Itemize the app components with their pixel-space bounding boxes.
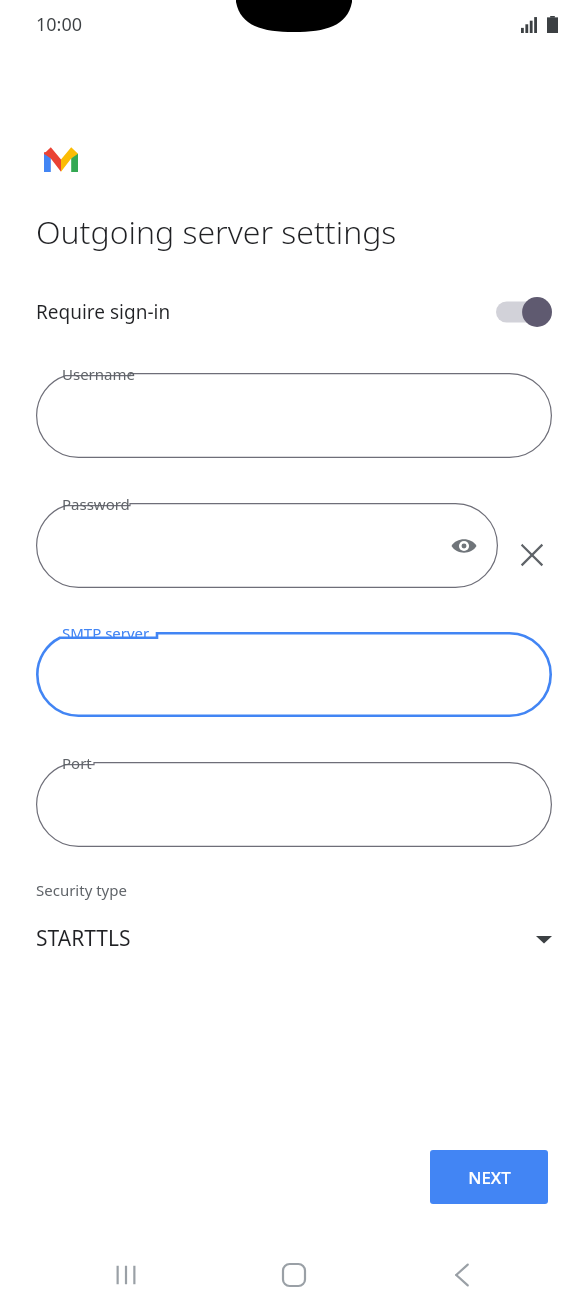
staticText: Password bbox=[62, 494, 130, 514]
staticText: 10:00 bbox=[36, 12, 83, 37]
staticText: Outgoing server settings bbox=[36, 210, 397, 254]
staticText: Port bbox=[62, 753, 92, 773]
staticText: Security type bbox=[36, 880, 127, 900]
staticText: STARTTLS bbox=[36, 924, 131, 953]
button[interactable]: Password bbox=[36, 503, 498, 588]
button[interactable]: Username bbox=[36, 373, 552, 458]
button[interactable]: Security type bbox=[0, 880, 588, 953]
button[interactable]: Port bbox=[36, 762, 552, 847]
button[interactable]: Clear bbox=[510, 533, 554, 577]
staticText: Require sign-in bbox=[36, 299, 171, 325]
staticText: Username bbox=[62, 364, 135, 384]
staticText: NEXT bbox=[468, 1166, 511, 1189]
button[interactable]: Home bbox=[268, 1249, 320, 1301]
staticText: SMTP server bbox=[62, 623, 150, 643]
button[interactable]: NEXT bbox=[430, 1150, 548, 1204]
button[interactable]: Show password bbox=[444, 526, 484, 566]
button[interactable]: Require sign-in toggle bbox=[496, 295, 552, 329]
button[interactable]: Back bbox=[436, 1249, 488, 1301]
button[interactable]: SMTP server bbox=[36, 632, 552, 717]
button[interactable]: Require sign-in bbox=[0, 286, 588, 338]
button[interactable]: Recents bbox=[100, 1249, 152, 1301]
